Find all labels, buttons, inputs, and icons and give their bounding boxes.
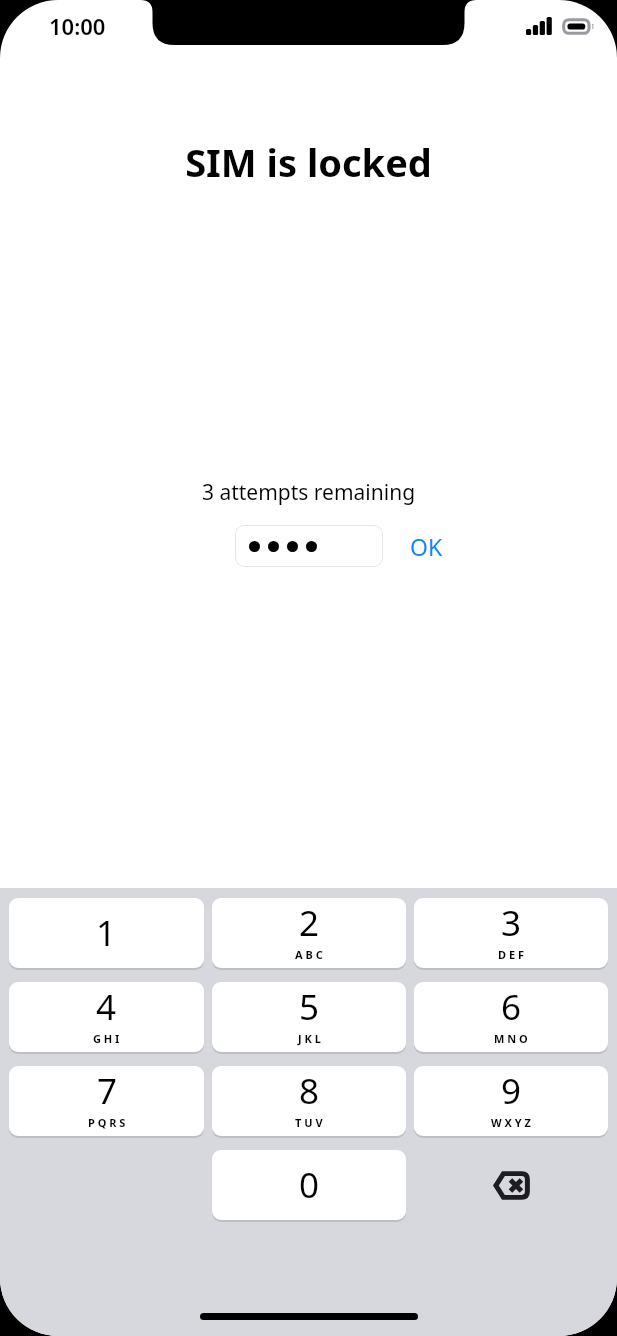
staticText: 5 bbox=[299, 983, 320, 1031]
staticText: G H I bbox=[93, 1031, 120, 1046]
button[interactable] bbox=[235, 525, 383, 567]
staticText: 3 bbox=[501, 899, 522, 947]
button[interactable]: 3 bbox=[414, 898, 608, 968]
staticText: 6 bbox=[501, 983, 522, 1031]
button[interactable]: 9 bbox=[414, 1066, 608, 1136]
staticText: 4 bbox=[96, 983, 117, 1031]
staticText: D E F bbox=[498, 947, 524, 962]
button[interactable]: 8 bbox=[212, 1066, 406, 1136]
button[interactable]: 4 bbox=[9, 982, 204, 1052]
staticText: P Q R S bbox=[88, 1115, 126, 1130]
staticText: 2 bbox=[299, 899, 320, 947]
staticText: A B C bbox=[295, 947, 323, 962]
staticText: 10:00 bbox=[49, 11, 106, 41]
staticText: OK bbox=[410, 531, 443, 562]
button[interactable]: 0 bbox=[212, 1150, 406, 1220]
button[interactable]: 7 bbox=[9, 1066, 204, 1136]
button[interactable]: 2 bbox=[212, 898, 406, 968]
staticText: M N O bbox=[494, 1031, 528, 1046]
staticText: 3 attempts remaining bbox=[0, 478, 617, 507]
button[interactable]: Delete bbox=[414, 1150, 608, 1220]
staticText: 8 bbox=[299, 1067, 320, 1115]
staticText: T U V bbox=[295, 1115, 323, 1130]
staticText: J K L bbox=[298, 1031, 321, 1046]
button[interactable]: OK bbox=[404, 526, 449, 567]
staticText: 9 bbox=[501, 1067, 522, 1115]
staticText: 1 bbox=[96, 909, 117, 957]
button[interactable]: 6 bbox=[414, 982, 608, 1052]
staticText: 0 bbox=[299, 1161, 320, 1209]
staticText: 7 bbox=[97, 1067, 118, 1115]
button[interactable]: 5 bbox=[212, 982, 406, 1052]
button[interactable]: 1 bbox=[9, 898, 204, 968]
staticText: SIM is locked bbox=[0, 136, 617, 188]
staticText: W X Y Z bbox=[491, 1115, 531, 1130]
